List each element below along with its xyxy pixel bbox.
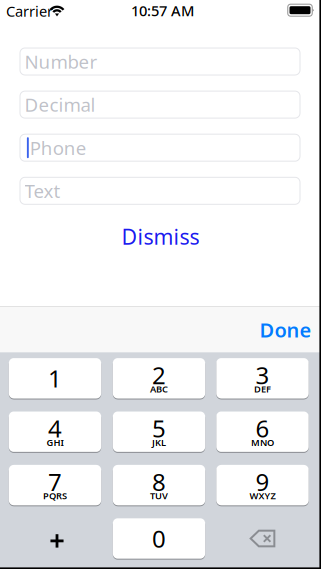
button[interactable]: 4	[9, 411, 101, 452]
staticText: DEF	[254, 383, 271, 395]
button[interactable]: Delete	[216, 518, 309, 559]
staticText: 7	[48, 466, 62, 498]
staticText: Phone	[30, 135, 87, 160]
button[interactable]: Text	[20, 177, 300, 204]
button[interactable]: 9	[216, 465, 309, 505]
staticText: WXYZ	[249, 489, 275, 502]
staticText: 3	[255, 359, 269, 391]
staticText: MNO	[251, 436, 274, 448]
staticText: Decimal	[24, 92, 95, 117]
staticText: ABC	[150, 383, 168, 395]
staticText: 4	[48, 412, 62, 444]
staticText: Number	[24, 49, 97, 74]
button[interactable]: Plus	[9, 518, 101, 559]
button[interactable]: Number	[20, 48, 300, 75]
button[interactable]: Done	[252, 310, 312, 350]
button[interactable]: 8	[113, 465, 205, 505]
staticText: 2	[152, 359, 166, 391]
button[interactable]: 7	[9, 465, 101, 505]
staticText: Text	[24, 178, 60, 203]
staticText: PQRS	[43, 489, 67, 502]
staticText: GHI	[46, 436, 63, 448]
button[interactable]: 6	[216, 411, 309, 452]
staticText: 8	[152, 466, 166, 498]
staticText: Carrier	[6, 1, 53, 21]
button[interactable]: Dismiss	[105, 221, 215, 251]
staticText: TUV	[150, 489, 168, 502]
button[interactable]: 1	[9, 358, 101, 398]
button[interactable]: Phone	[20, 134, 300, 161]
button[interactable]: 2	[113, 358, 205, 398]
staticText: 10:57 AM	[131, 1, 194, 20]
staticText: JKL	[152, 436, 166, 448]
staticText: 1	[48, 362, 62, 394]
button[interactable]: Decimal	[20, 91, 300, 118]
button[interactable]: 5	[113, 411, 205, 452]
staticText: 9	[255, 466, 269, 498]
button[interactable]: 3	[216, 358, 309, 398]
staticText: Done	[260, 316, 312, 343]
staticText: Dismiss	[121, 222, 199, 251]
staticText: 0	[152, 523, 166, 554]
button[interactable]: 0	[113, 518, 205, 559]
staticText: 6	[255, 412, 269, 444]
staticText: 5	[152, 412, 166, 444]
